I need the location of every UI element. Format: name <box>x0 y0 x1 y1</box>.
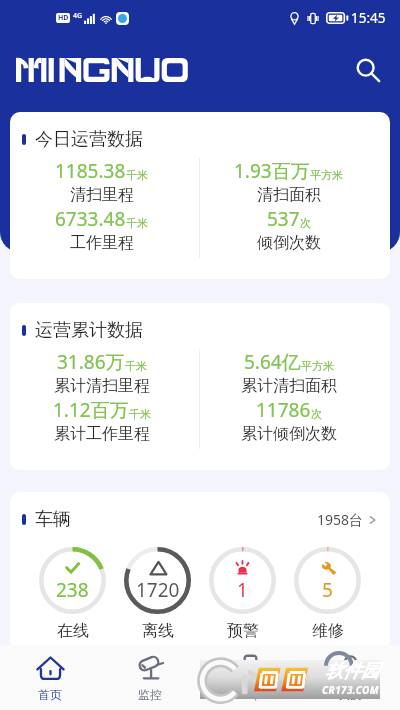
staticText: 千米 <box>129 407 151 421</box>
staticText: 1.12百万 <box>53 397 129 423</box>
staticText: 平方米 <box>310 168 343 182</box>
staticText: 千米 <box>125 359 147 373</box>
staticText: 工作里程 <box>70 233 134 253</box>
staticText: 31.86万 <box>57 349 125 375</box>
staticText: 清扫里程 <box>70 185 134 205</box>
staticText: 537 <box>267 206 300 232</box>
staticText: 平方米 <box>301 359 334 373</box>
button[interactable]: 238 <box>30 547 115 641</box>
staticText: 清扫面积 <box>257 185 321 205</box>
staticText: 238 <box>56 577 89 603</box>
staticText: 监控 <box>138 687 162 702</box>
staticText: 5.64亿 <box>244 349 301 375</box>
staticText: 1185.38 <box>55 158 126 184</box>
staticText: 累计工作里程 <box>54 424 150 444</box>
staticText: 1720 <box>136 577 180 603</box>
staticText: 工单 <box>238 687 262 702</box>
staticText: 车辆 <box>35 508 71 531</box>
staticText: 累计清扫面积 <box>241 376 337 396</box>
button[interactable]: 5 <box>285 547 370 641</box>
button[interactable]: 运营累计数据 <box>10 303 390 470</box>
staticText: HD <box>58 13 69 23</box>
staticText: 千米 <box>126 216 148 230</box>
button[interactable]: Search <box>348 50 388 90</box>
button[interactable]: 1 <box>200 547 285 641</box>
staticText: 4G <box>73 11 83 21</box>
button[interactable]: 今日运营数据 <box>10 112 390 279</box>
staticText: 累计倾倒次数 <box>241 424 337 444</box>
other: MINGNUO <box>16 58 188 82</box>
staticText: 累计清扫里程 <box>54 376 150 396</box>
staticText: 在线 <box>57 621 89 641</box>
button[interactable]: 监控 <box>100 645 200 710</box>
staticText: 千米 <box>126 168 148 182</box>
button[interactable]: 工单 <box>200 645 300 710</box>
staticText: 15:45 <box>351 9 386 27</box>
staticText: 11786 <box>256 397 311 423</box>
button[interactable]: 首页 <box>0 645 100 710</box>
staticText: 软件园 <box>325 660 379 683</box>
staticText: 首页 <box>38 687 62 702</box>
staticText: 预警 <box>227 621 259 641</box>
staticText: CR173.COM <box>322 683 379 697</box>
staticText: 1.93百万 <box>234 158 310 184</box>
staticText: 我的 <box>338 687 362 702</box>
staticText: 6733.48 <box>55 206 126 232</box>
staticText: 运营累计数据 <box>35 319 143 342</box>
staticText: 次 <box>300 216 311 230</box>
staticText: 离线 <box>142 621 174 641</box>
staticText: 维修 <box>312 621 344 641</box>
button[interactable]: 1720 <box>115 547 200 641</box>
staticText: 1958台 <box>317 510 364 529</box>
staticText: 次 <box>311 407 322 421</box>
staticText: 今日运营数据 <box>35 128 143 151</box>
staticText: 1 <box>237 577 248 603</box>
staticText: 5 <box>322 577 333 603</box>
button[interactable]: 我的 <box>300 645 400 710</box>
button[interactable]: 1958台 <box>315 508 378 531</box>
staticText: 倾倒次数 <box>257 233 321 253</box>
